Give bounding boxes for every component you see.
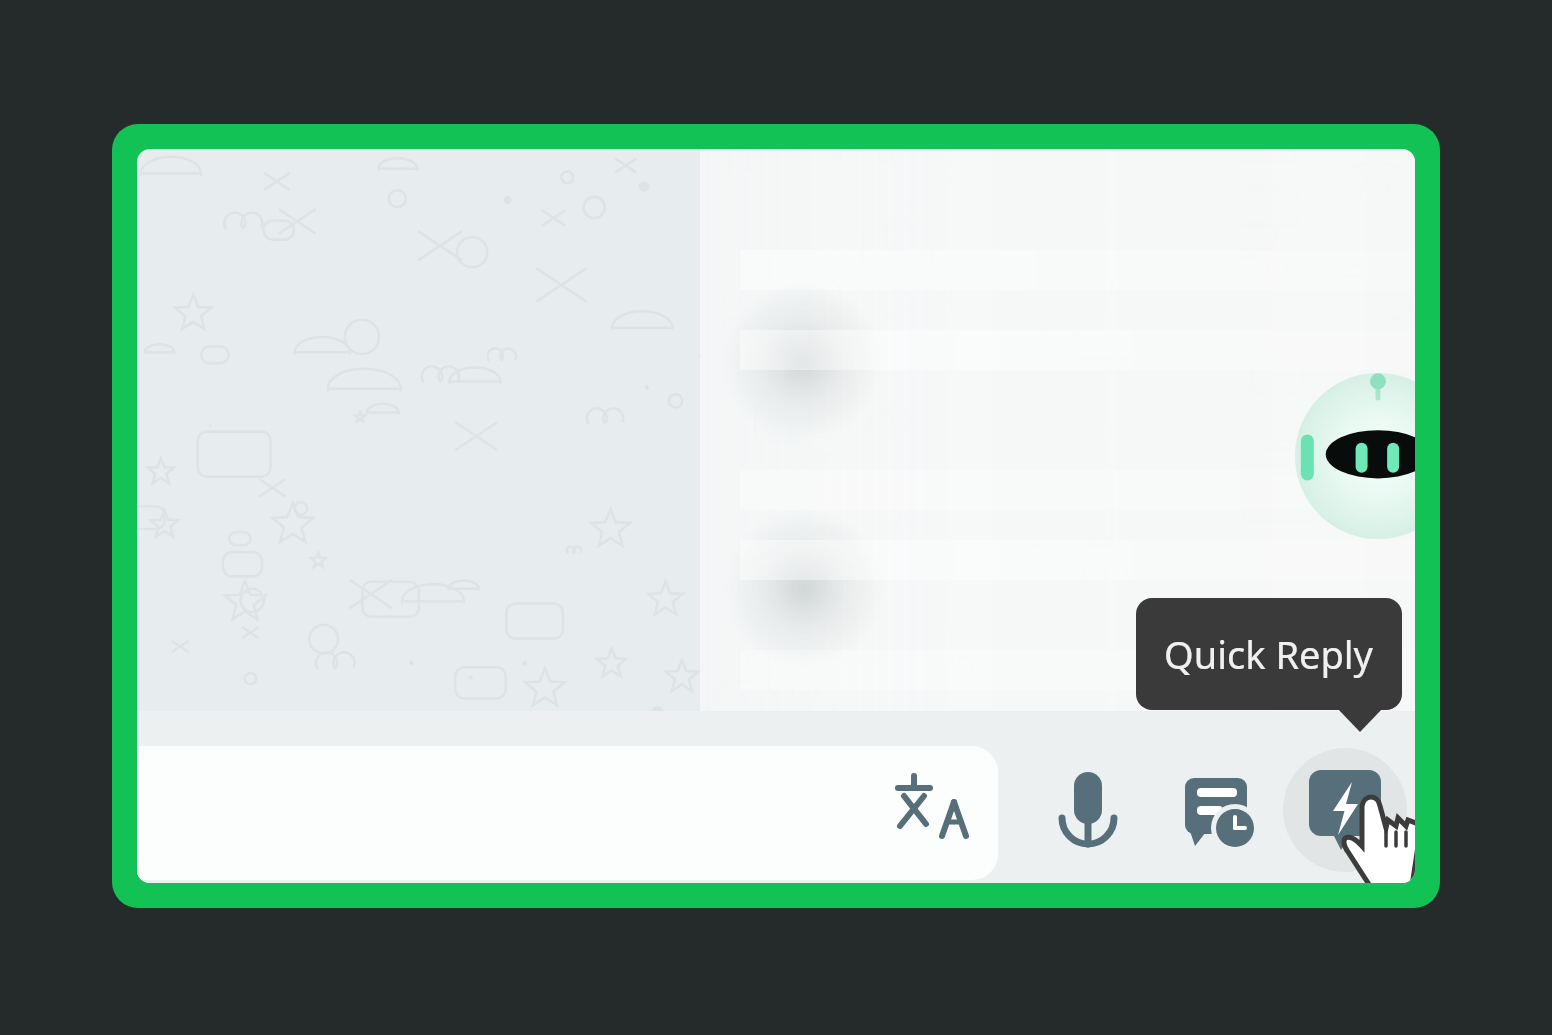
button[interactable]: Quick Reply xyxy=(1287,752,1403,868)
button[interactable]: Voice message xyxy=(1030,754,1146,870)
button[interactable]: Schedule message xyxy=(1161,754,1277,870)
button[interactable]: Message input xyxy=(84,746,1038,880)
staticText: Quick Reply xyxy=(1164,628,1374,680)
